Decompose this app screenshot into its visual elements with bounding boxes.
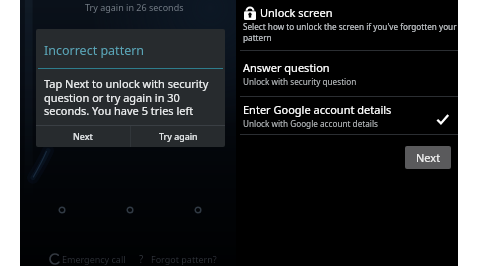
staticText: Answer question xyxy=(243,60,330,75)
other: Lock xyxy=(244,7,256,21)
staticText: Incorrect pattern xyxy=(44,42,145,59)
staticText: Next xyxy=(416,150,441,165)
button[interactable]: Emergency call xyxy=(50,251,126,266)
other: Selected xyxy=(436,113,449,126)
staticText: Next xyxy=(73,131,93,143)
staticText: Enter Google account details xyxy=(243,102,392,117)
button[interactable]: Enter Google account details xyxy=(236,97,458,134)
staticText: Tap Next to unlock with security questio… xyxy=(44,76,216,118)
button[interactable]: Answer question xyxy=(236,51,458,96)
staticText: Unlock screen xyxy=(260,5,333,20)
staticText: Try again xyxy=(159,131,198,143)
button[interactable]: Try again xyxy=(131,126,225,147)
button[interactable]: Next xyxy=(36,126,130,147)
button[interactable]: ? xyxy=(139,251,217,266)
staticText: Try again in 26 seconds xyxy=(85,1,184,13)
staticText: Forgot pattern? xyxy=(151,253,217,265)
staticText: Unlock with security question xyxy=(243,76,357,87)
staticText: Unlock with Google account details xyxy=(243,118,378,129)
staticText: Emergency call xyxy=(62,253,126,265)
staticText: ? xyxy=(139,252,144,266)
staticText: Select how to unlock the screen if you'v… xyxy=(243,21,457,43)
button[interactable]: Next xyxy=(405,146,451,169)
